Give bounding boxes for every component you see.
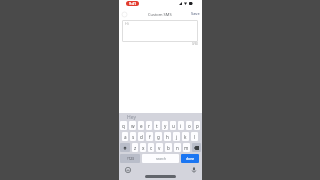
button[interactable]: l <box>191 132 198 141</box>
button[interactable]: done <box>181 154 199 163</box>
staticText: ?123 <box>127 157 134 161</box>
staticText: u <box>172 123 175 129</box>
button[interactable]: f <box>146 132 153 141</box>
staticText: b <box>167 145 170 151</box>
staticText: Save <box>191 11 200 16</box>
button[interactable]: Emoji <box>123 165 132 174</box>
staticText: done <box>186 156 195 161</box>
button[interactable]: Backspace <box>192 143 201 152</box>
button[interactable]: v <box>156 143 163 152</box>
staticText: f <box>149 134 151 140</box>
staticText: t <box>156 123 158 129</box>
button[interactable]: u <box>170 121 176 130</box>
staticText: g <box>157 134 160 140</box>
staticText: y <box>164 123 167 129</box>
staticText: s <box>132 134 135 140</box>
button[interactable]: Hey <box>127 114 136 120</box>
staticText: Hey <box>127 114 136 120</box>
button[interactable]: n <box>174 143 181 152</box>
button[interactable]: j <box>173 132 180 141</box>
button[interactable]: p <box>194 121 200 130</box>
button[interactable]: w <box>129 121 136 130</box>
button[interactable]: r <box>146 121 152 130</box>
button[interactable]: o <box>186 121 192 130</box>
button[interactable]: Voice input <box>189 165 198 174</box>
staticText: q <box>122 123 125 129</box>
staticText: m <box>184 145 189 151</box>
staticText: i <box>180 123 182 129</box>
staticText: j <box>176 134 178 140</box>
button[interactable]: a <box>122 132 128 141</box>
staticText: Custom SMS <box>148 12 172 17</box>
button[interactable]: Save <box>190 10 201 17</box>
staticText: e <box>140 123 143 129</box>
staticText: x <box>142 145 145 151</box>
button[interactable]: q <box>120 121 127 130</box>
button[interactable]: b <box>165 143 172 152</box>
staticText: z <box>134 145 137 151</box>
button[interactable]: y <box>162 121 168 130</box>
staticText: w <box>131 123 135 129</box>
button[interactable]: x <box>140 143 146 152</box>
button[interactable]: m <box>183 143 190 152</box>
staticText: v <box>158 145 161 151</box>
button[interactable]: ?123 <box>120 154 140 163</box>
button[interactable]: g <box>155 132 162 141</box>
staticText: p <box>196 123 199 129</box>
button[interactable]: z <box>132 143 138 152</box>
button[interactable]: t <box>154 121 160 130</box>
button[interactable]: i <box>178 121 184 130</box>
button[interactable]: Back <box>120 10 128 18</box>
staticText: Hi <box>125 21 129 26</box>
staticText: search <box>156 157 166 161</box>
button[interactable]: s <box>130 132 136 141</box>
button[interactable]: Space <box>142 154 179 163</box>
staticText: 0/60 <box>192 42 198 46</box>
staticText: r <box>148 123 150 129</box>
staticText: 9:41 <box>129 1 137 6</box>
button[interactable]: d <box>138 132 144 141</box>
button[interactable]: c <box>148 143 154 152</box>
staticText: c <box>150 145 153 151</box>
button[interactable]: Hi <box>122 20 198 42</box>
staticText: a <box>124 134 127 140</box>
staticText: h <box>166 134 169 140</box>
staticText: d <box>140 134 143 140</box>
staticText: l <box>194 134 196 140</box>
staticText: k <box>184 134 187 140</box>
staticText: n <box>176 145 179 151</box>
staticText: o <box>188 123 191 129</box>
button[interactable]: h <box>164 132 171 141</box>
button[interactable]: e <box>138 121 144 130</box>
button[interactable]: k <box>182 132 189 141</box>
button[interactable]: Shift <box>120 143 130 152</box>
